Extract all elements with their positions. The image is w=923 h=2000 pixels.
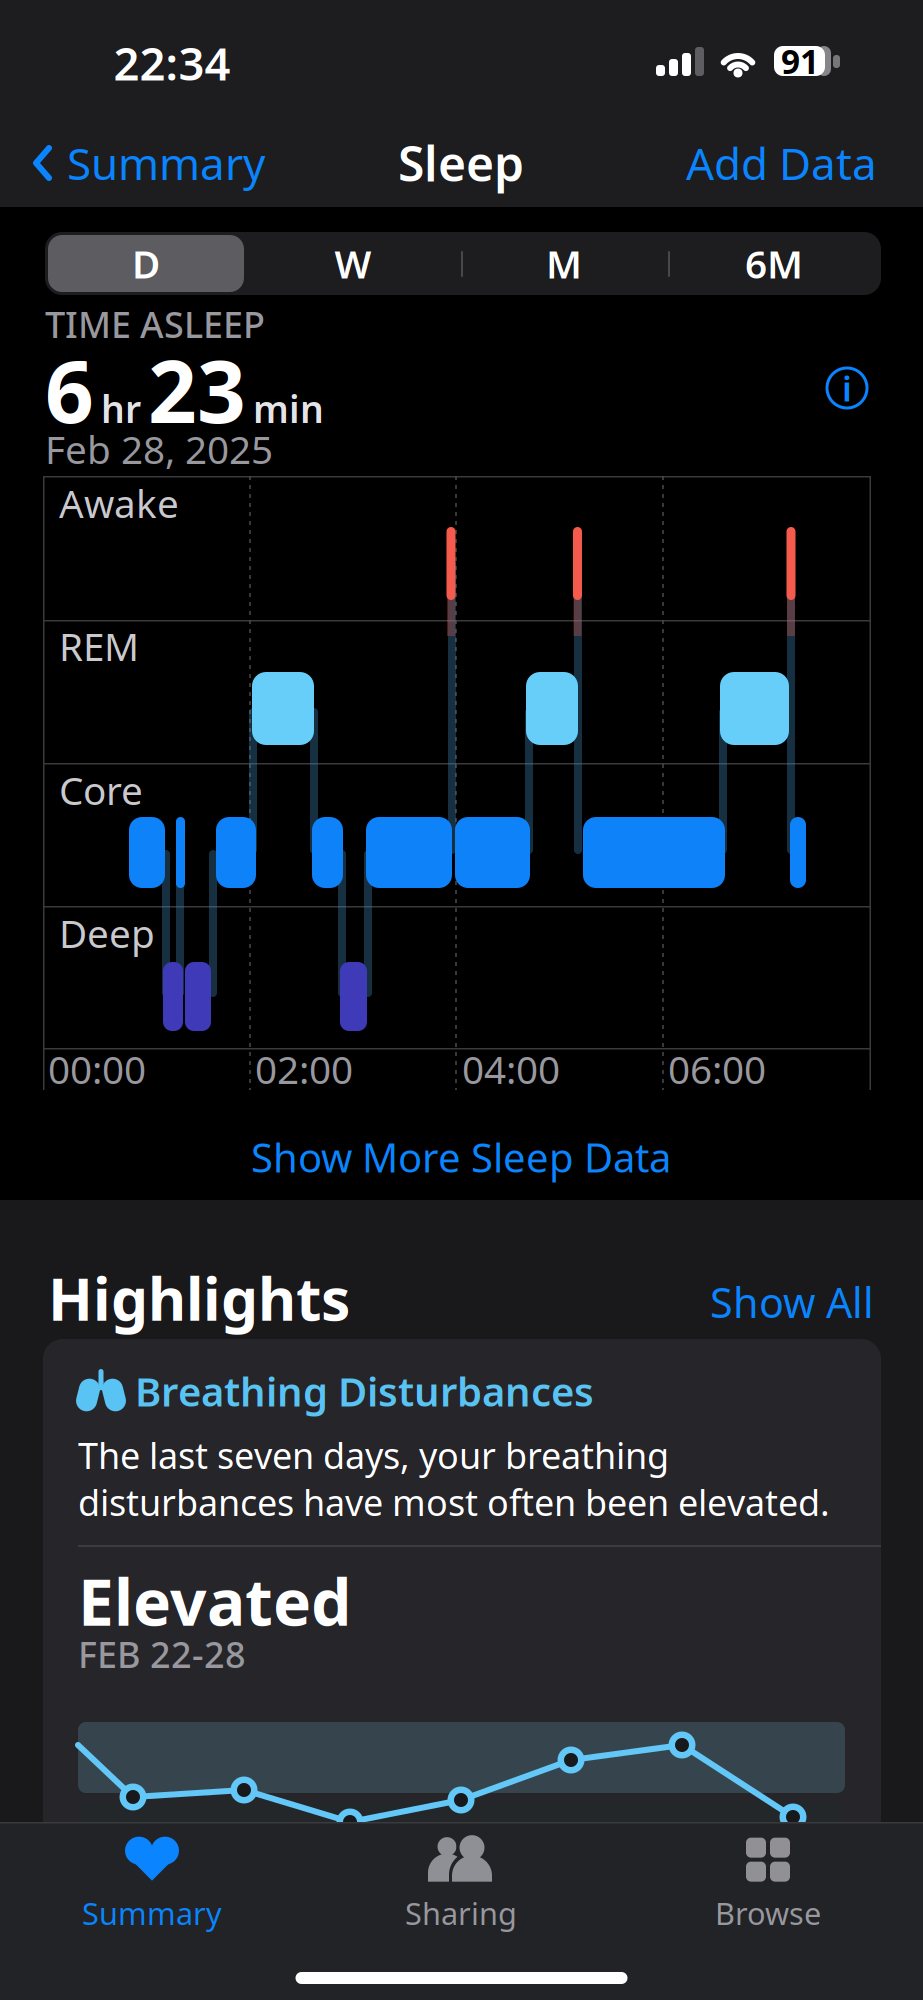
staticText: REM [59,620,139,672]
button[interactable]: Show All [710,1275,874,1329]
staticText: The last seven days, your breathing [78,1431,669,1479]
staticText: Sharing [405,1893,517,1933]
staticText: Show All [710,1275,874,1329]
staticText: 06:00 [668,1043,766,1095]
staticText: Core [59,764,143,816]
staticText: Sleep [398,131,524,195]
staticText: Feb 28, 2025 [45,423,273,475]
staticText: Summary [67,134,265,192]
button[interactable]: Summary [37,1829,267,1939]
staticText: 91 [781,39,819,83]
staticText: Browse [715,1893,821,1933]
button[interactable]: Show More Sleep Data [251,1130,671,1183]
button[interactable]: Sharing [346,1829,576,1939]
button[interactable]: About Time Asleep [825,366,869,410]
staticText: M [546,238,582,289]
staticText: 6 [45,333,94,447]
staticText: D [132,238,160,289]
staticText: FEB 22-28 [78,1630,246,1678]
button[interactable]: W [263,235,443,292]
staticText: hr [101,384,141,433]
staticText: Summary [82,1893,222,1933]
staticText: 22:34 [113,33,230,93]
staticText: Deep [59,907,155,959]
button[interactable]: M [474,235,654,292]
button[interactable]: Browse [653,1829,883,1939]
staticText: 00:00 [48,1043,146,1095]
button[interactable]: D [48,235,244,292]
staticText: Highlights [48,1259,350,1337]
staticText: 02:00 [255,1043,353,1095]
staticText: i [842,365,852,411]
button[interactable]: 6M [684,235,864,292]
staticText: 04:00 [462,1043,560,1095]
button[interactable]: Add Data [686,134,877,192]
staticText: 23 [148,333,246,447]
staticText: Add Data [686,134,877,192]
staticText: disturbances have most often been elevat… [78,1478,830,1526]
staticText: Elevated [78,1558,351,1643]
staticText: 6M [745,238,803,289]
staticText: Show More Sleep Data [251,1130,671,1183]
staticText: TIME ASLEEP [45,300,265,348]
staticText: Awake [59,477,179,529]
staticText: W [334,238,371,289]
button[interactable]: Breathing Disturbances highlight [43,1339,881,2000]
staticText: Breathing Disturbances [135,1364,594,1417]
button[interactable]: Summary [33,134,265,192]
staticText: min [253,384,324,433]
